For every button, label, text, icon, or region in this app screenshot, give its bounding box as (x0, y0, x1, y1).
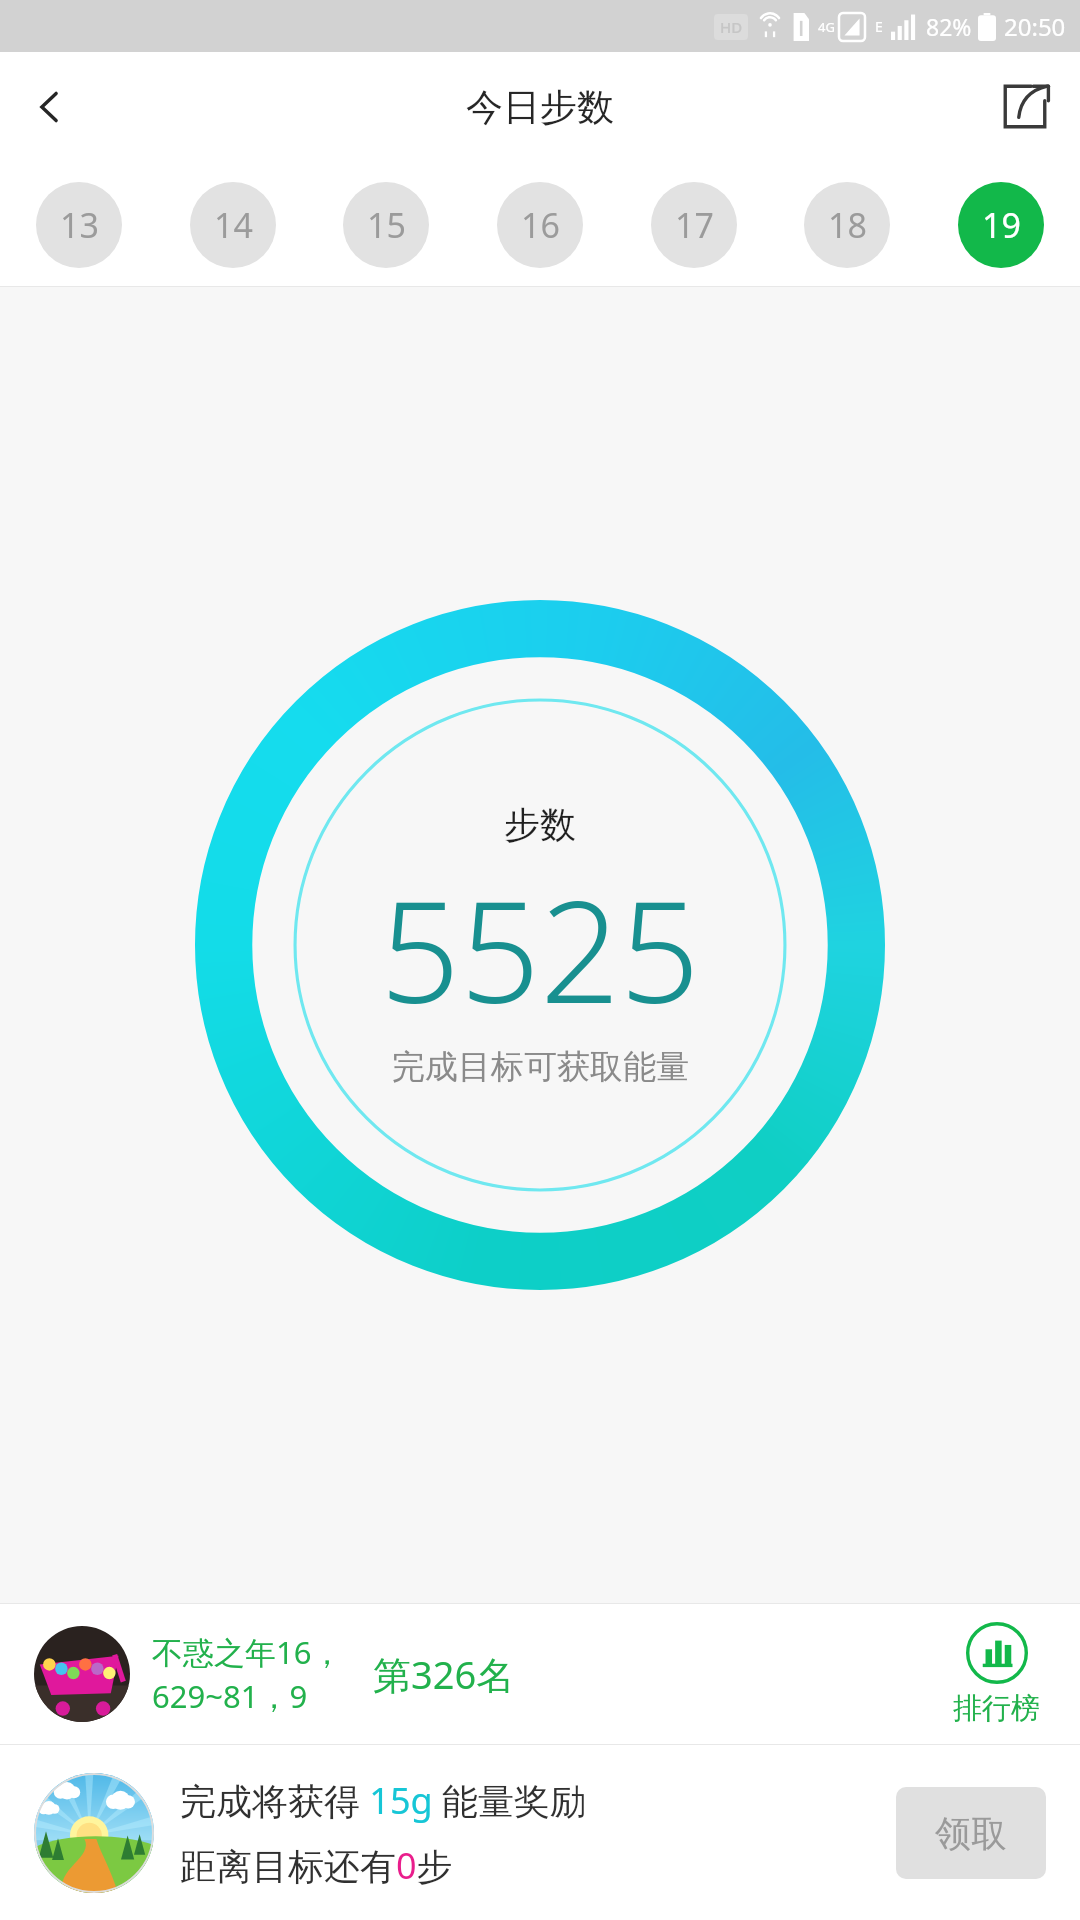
staticText: 4G (818, 18, 835, 36)
button[interactable]: 领取 (896, 1787, 1046, 1879)
button[interactable]: 18 (804, 182, 890, 268)
button[interactable]: 13 (36, 182, 122, 268)
button[interactable]: 15 (343, 182, 429, 268)
staticText: 19 (982, 202, 1021, 248)
staticText: 16 (521, 202, 560, 248)
staticText: 今日步数 (466, 84, 614, 131)
button[interactable]: 19 (958, 182, 1044, 268)
button[interactable]: 不惑之年16， 629~81，9 (0, 1604, 1080, 1744)
button[interactable]: 16 (497, 182, 583, 268)
staticText: HD (720, 17, 743, 37)
staticText: 20:50 (1004, 10, 1066, 43)
button[interactable]: Share (970, 52, 1080, 162)
staticText: 82% (926, 11, 972, 42)
staticText: 距离目标还有0步 (180, 1841, 453, 1890)
staticText: E (875, 17, 883, 36)
staticText: 15 (367, 202, 406, 248)
staticText: 完成目标可获取能量 (392, 1046, 689, 1088)
staticText: 13 (60, 202, 99, 248)
staticText: 步数 (504, 802, 576, 847)
button[interactable]: 17 (651, 182, 737, 268)
button[interactable]: 排行榜 (947, 1622, 1046, 1727)
button[interactable]: 14 (190, 182, 276, 268)
staticText: 第326名 (373, 1648, 515, 1700)
staticText: 排行榜 (953, 1690, 1040, 1727)
staticText: 5525 (380, 853, 700, 1044)
staticText: 18 (828, 202, 867, 248)
staticText: 不惑之年16， 629~81，9 (152, 1631, 343, 1717)
staticText: 领取 (935, 1811, 1007, 1856)
button[interactable]: Back (0, 57, 100, 157)
staticText: 完成将获得 15g 能量奖励 (180, 1776, 587, 1825)
staticText: 17 (675, 202, 714, 248)
staticText: 14 (214, 202, 253, 248)
